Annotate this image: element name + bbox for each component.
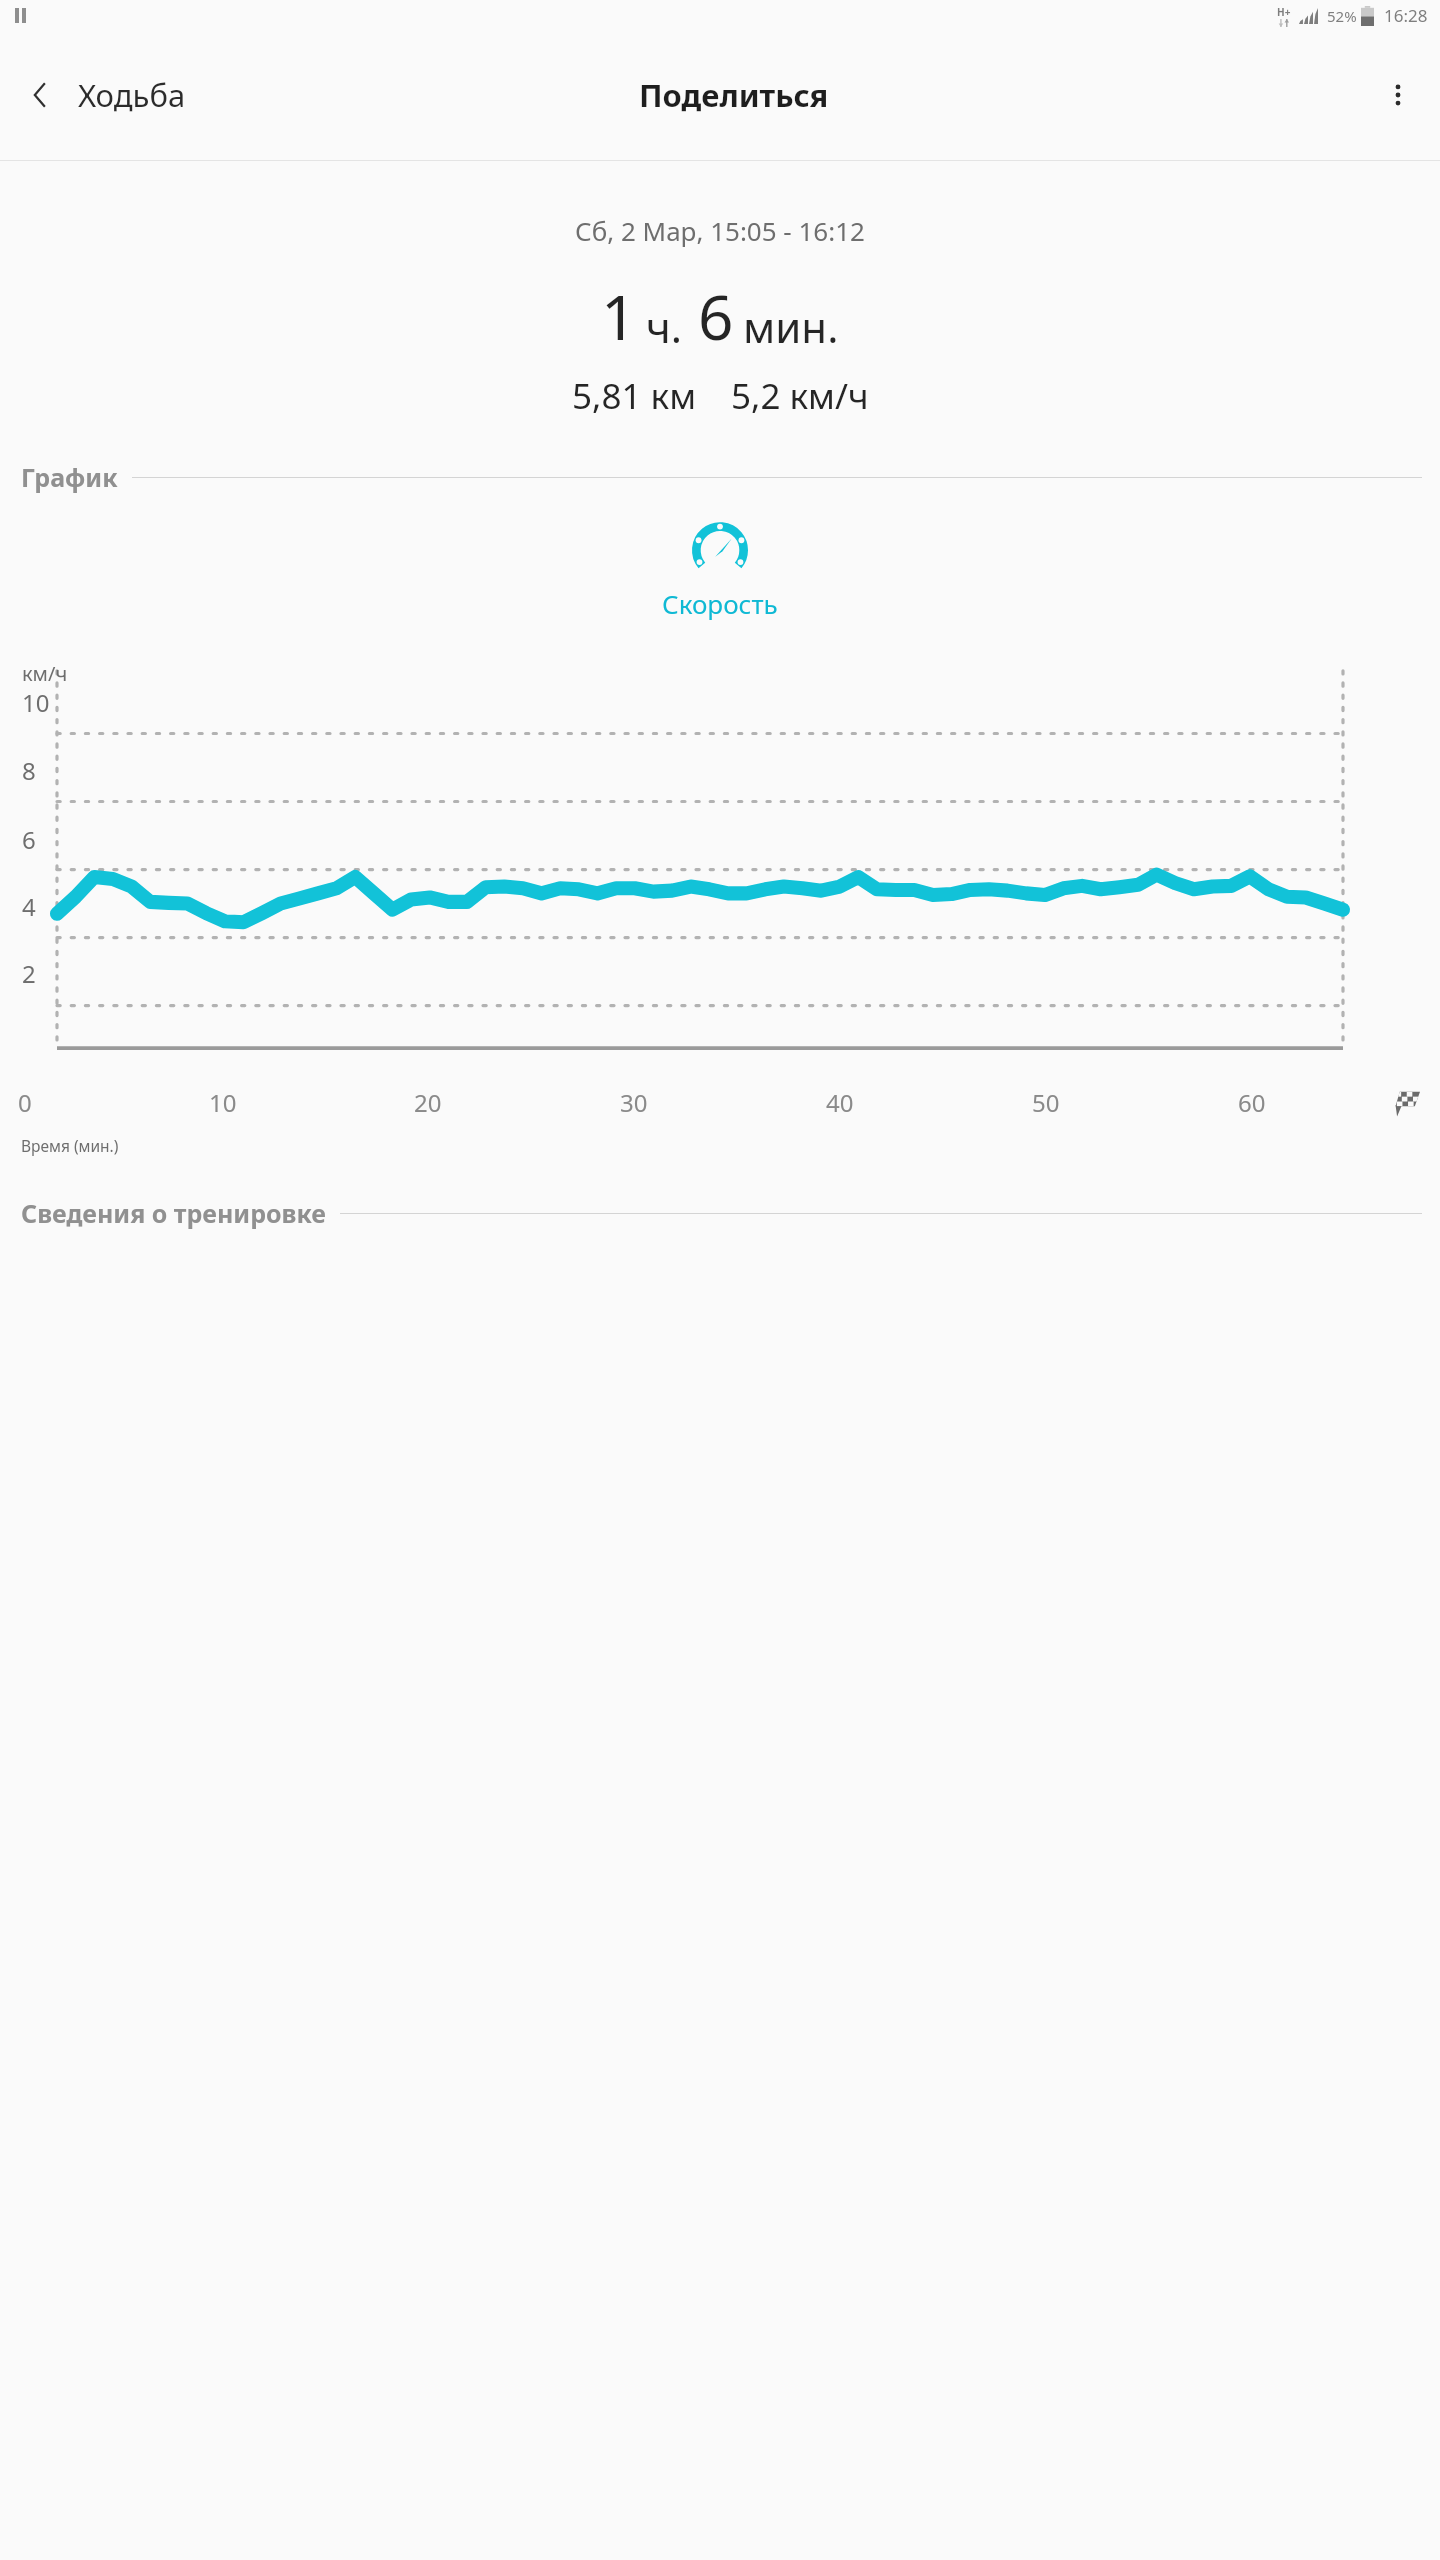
- staticText: 16:28: [1384, 4, 1428, 27]
- staticText: км/ч: [22, 660, 68, 687]
- staticText: Поделиться: [639, 74, 829, 116]
- staticText: Сведения о тренировке: [21, 1196, 326, 1230]
- staticText: График: [21, 460, 118, 494]
- staticText: 10: [22, 686, 50, 719]
- staticText: 4: [22, 890, 36, 923]
- button[interactable]: Скорость: [0, 520, 1440, 621]
- staticText: Сб, 2 Мар, 15:05 - 16:12: [575, 213, 865, 248]
- button[interactable]: Дополнительно: [1366, 63, 1430, 127]
- staticText: ч.: [646, 298, 682, 355]
- staticText: H+: [1277, 5, 1291, 19]
- staticText: мин.: [743, 298, 839, 355]
- staticText: 30: [620, 1086, 648, 1119]
- staticText: 5,2 км/ч: [731, 372, 869, 420]
- staticText: 10: [209, 1086, 237, 1119]
- staticText: 52%: [1327, 6, 1357, 26]
- staticText: 6: [698, 274, 734, 358]
- button[interactable]: Поделиться: [627, 58, 841, 132]
- staticText: 40: [826, 1086, 854, 1119]
- staticText: 1: [601, 274, 637, 358]
- staticText: Время (мин.): [21, 1135, 119, 1156]
- staticText: Скорость: [662, 586, 778, 621]
- staticText: 60: [1238, 1086, 1266, 1119]
- staticText: 2: [22, 957, 36, 990]
- staticText: 0: [18, 1086, 32, 1119]
- staticText: 20: [414, 1086, 442, 1119]
- staticText: 8: [22, 754, 36, 787]
- staticText: Ходьба: [78, 74, 186, 116]
- staticText: 5,81 км: [572, 372, 697, 420]
- button[interactable]: Назад: [8, 63, 72, 127]
- staticText: 6: [22, 823, 36, 856]
- staticText: 50: [1032, 1086, 1060, 1119]
